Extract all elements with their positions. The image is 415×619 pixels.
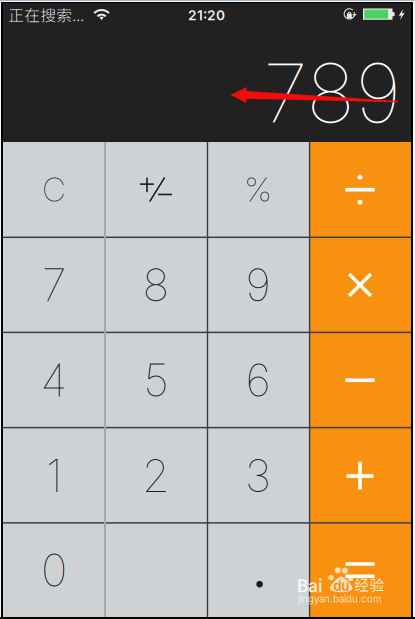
staticText: 21:20 — [188, 7, 225, 24]
button[interactable]: 7 — [3, 237, 105, 333]
button[interactable]: Toggle sign — [105, 142, 207, 237]
staticText: % — [244, 169, 271, 209]
button[interactable]: 6 — [207, 333, 309, 428]
button[interactable]: Equals — [309, 523, 411, 617]
staticText: 8 — [142, 258, 169, 312]
button[interactable]: Divide — [309, 142, 411, 237]
staticText: du — [333, 578, 349, 594]
button[interactable]: 8 — [105, 237, 207, 333]
staticText: C — [42, 169, 65, 209]
button[interactable]: Multiply — [309, 237, 411, 333]
button[interactable]: 0 — [3, 523, 207, 617]
staticText: 9 — [245, 258, 270, 312]
button[interactable]: Decimal point — [207, 523, 309, 617]
button[interactable]: Add — [309, 428, 411, 523]
staticText: 经验 — [354, 574, 384, 595]
staticText: jingyan.baidu.com — [298, 593, 382, 605]
staticText: 5 — [143, 353, 168, 407]
button[interactable]: 3 — [207, 428, 309, 523]
button[interactable]: 4 — [3, 333, 105, 428]
button[interactable]: 1 — [3, 428, 105, 523]
staticText: Bai — [297, 575, 323, 596]
staticText: 3 — [245, 449, 271, 503]
staticText: 2 — [142, 449, 170, 503]
staticText: 7 — [42, 258, 66, 312]
staticText: 4 — [40, 353, 67, 407]
button[interactable]: 5 — [105, 333, 207, 428]
button[interactable]: Clear — [3, 142, 105, 237]
staticText: 789 — [263, 44, 401, 142]
staticText: 0 — [41, 543, 67, 597]
button[interactable]: Subtract — [309, 333, 411, 428]
button[interactable]: 9 — [207, 237, 309, 333]
button[interactable]: 2 — [105, 428, 207, 523]
staticText: 1 — [46, 449, 62, 503]
staticText: 6 — [245, 353, 270, 407]
button[interactable]: Percent — [207, 142, 309, 237]
staticText: 正在搜索... — [8, 3, 84, 26]
